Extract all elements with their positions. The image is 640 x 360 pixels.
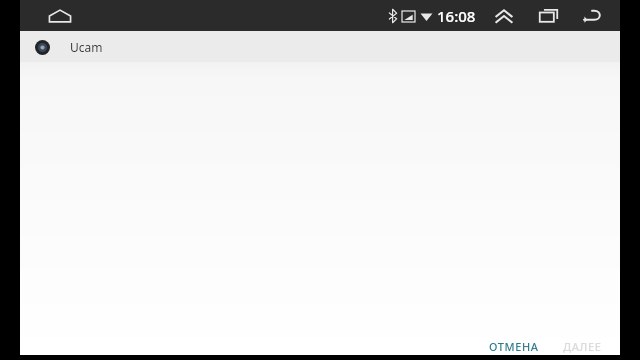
button[interactable]: ОТМЕНА <box>477 331 551 360</box>
staticText: ОТМЕНА <box>489 339 539 354</box>
button[interactable]: Recents <box>526 0 570 31</box>
button[interactable]: Back <box>570 0 614 31</box>
staticText: 16:08 <box>437 6 476 26</box>
button[interactable]: ДАЛЕЕ <box>551 331 614 360</box>
staticText: ДАЛЕЕ <box>563 339 602 354</box>
staticText: Ucam <box>70 39 103 55</box>
button[interactable]: Home <box>38 0 82 31</box>
button[interactable]: Expand <box>482 0 526 31</box>
button[interactable]: Ucam app icon <box>28 33 56 61</box>
